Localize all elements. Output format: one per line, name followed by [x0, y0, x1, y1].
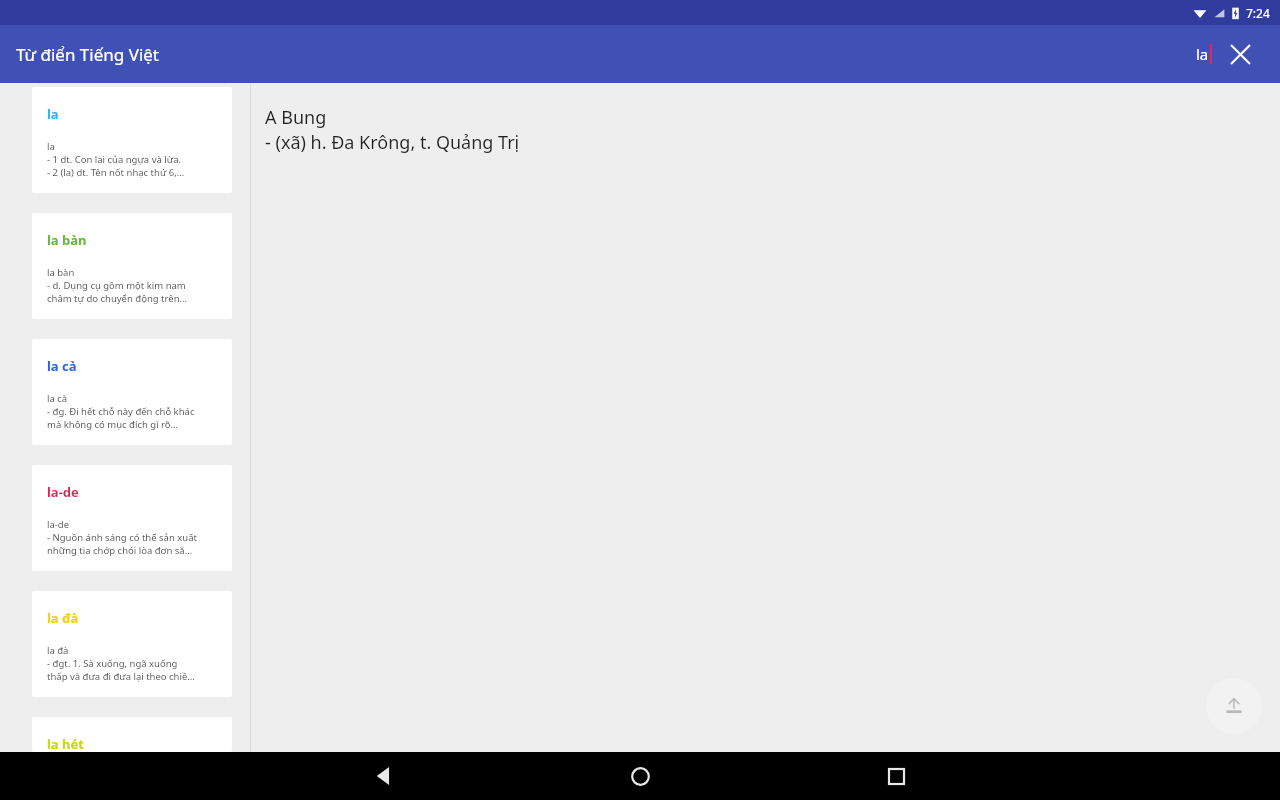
staticText: - 2 (la) dt. Tên nốt nhạc thứ 6,… [47, 166, 185, 179]
staticText: la [1196, 44, 1209, 64]
staticText: la [47, 105, 59, 123]
staticText: châm tự do chuyển động trên… [47, 292, 188, 305]
button[interactable]: Export [1206, 678, 1262, 734]
staticText: - đgt. 1. Sà xuống, ngã xuống [47, 657, 178, 670]
staticText: mà không có mục đích gì rõ… [47, 418, 179, 431]
staticText: la-de [47, 518, 70, 531]
staticText: la bàn [47, 266, 75, 279]
button[interactable]: la [1196, 44, 1212, 64]
button[interactable]: la đà [32, 591, 232, 697]
button[interactable]: la hét [32, 717, 232, 752]
staticText: A Bung [265, 105, 327, 130]
staticText: - 1 dt. Con lai của ngựa và lừa. [47, 153, 182, 166]
staticText: - d. Dụng cụ gồm một kim nam [47, 279, 186, 292]
staticText: 7:24 [1246, 5, 1270, 21]
staticText: - (xã) h. Đa Krông, t. Quảng Trị [265, 130, 520, 155]
staticText: - Nguồn ánh sáng có thể sản xuất [47, 531, 197, 544]
button[interactable]: Back [256, 752, 512, 800]
button[interactable]: Recent apps [768, 752, 1024, 800]
button[interactable]: la-de [32, 465, 232, 571]
staticText: thấp và đưa đi đưa lại theo chiề… [47, 670, 195, 683]
staticText: la hét [47, 735, 84, 752]
staticText: la đà [47, 644, 69, 657]
staticText: la [47, 140, 55, 153]
staticText: la đà [47, 609, 79, 627]
button[interactable]: la cà [32, 339, 232, 445]
staticText: la-de [47, 483, 79, 501]
staticText: la bàn [47, 231, 87, 249]
staticText: những tia chớp chói lòa đơn sắ… [47, 544, 193, 557]
button[interactable]: Home [512, 752, 768, 800]
staticText: la cà [47, 392, 68, 405]
button[interactable]: Clear search [1220, 34, 1260, 74]
staticText: la cà [47, 357, 77, 375]
button[interactable]: la [32, 87, 232, 193]
button[interactable]: la bàn [32, 213, 232, 319]
staticText: - đg. Đi hết chỗ này đến chỗ khác [47, 405, 195, 418]
staticText: Từ điển Tiếng Việt [16, 43, 159, 66]
